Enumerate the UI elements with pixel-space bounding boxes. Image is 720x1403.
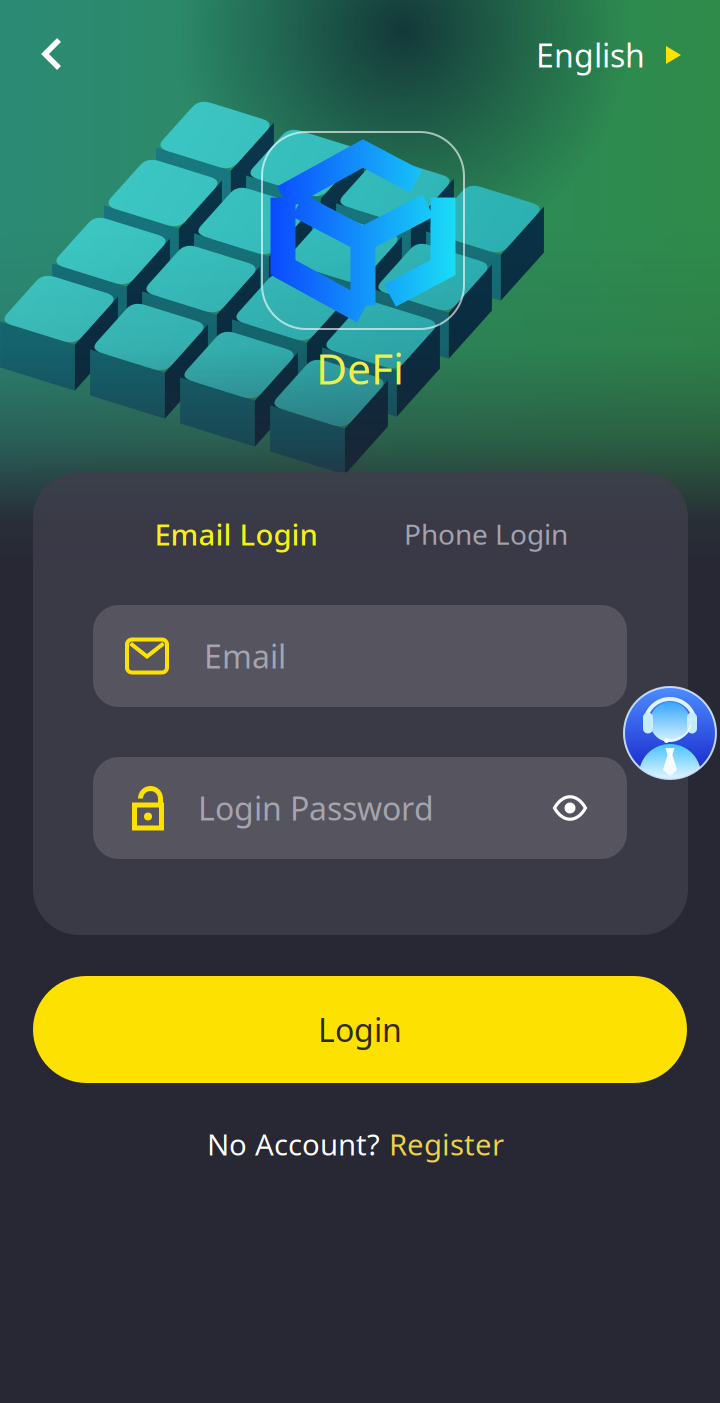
staticText: Email Login [154, 514, 317, 553]
button[interactable]: English [503, 23, 720, 87]
button[interactable]: Phone Login [386, 508, 586, 560]
button[interactable]: Login [33, 976, 687, 1083]
staticText: No Account? [207, 1124, 380, 1163]
button[interactable]: Show password [542, 780, 598, 836]
button[interactable]: Customer support [624, 687, 716, 779]
button[interactable]: Email Login [136, 508, 336, 560]
staticText: Email [204, 635, 286, 677]
staticText: English [536, 34, 645, 76]
staticText: DeFi [316, 340, 404, 396]
button[interactable]: Back [17, 19, 87, 89]
staticText: Register [389, 1124, 504, 1163]
staticText: Phone Login [404, 515, 568, 553]
staticText: Login Password [198, 787, 434, 829]
button[interactable]: Register [380, 1116, 513, 1171]
staticText: Login [318, 1008, 402, 1051]
